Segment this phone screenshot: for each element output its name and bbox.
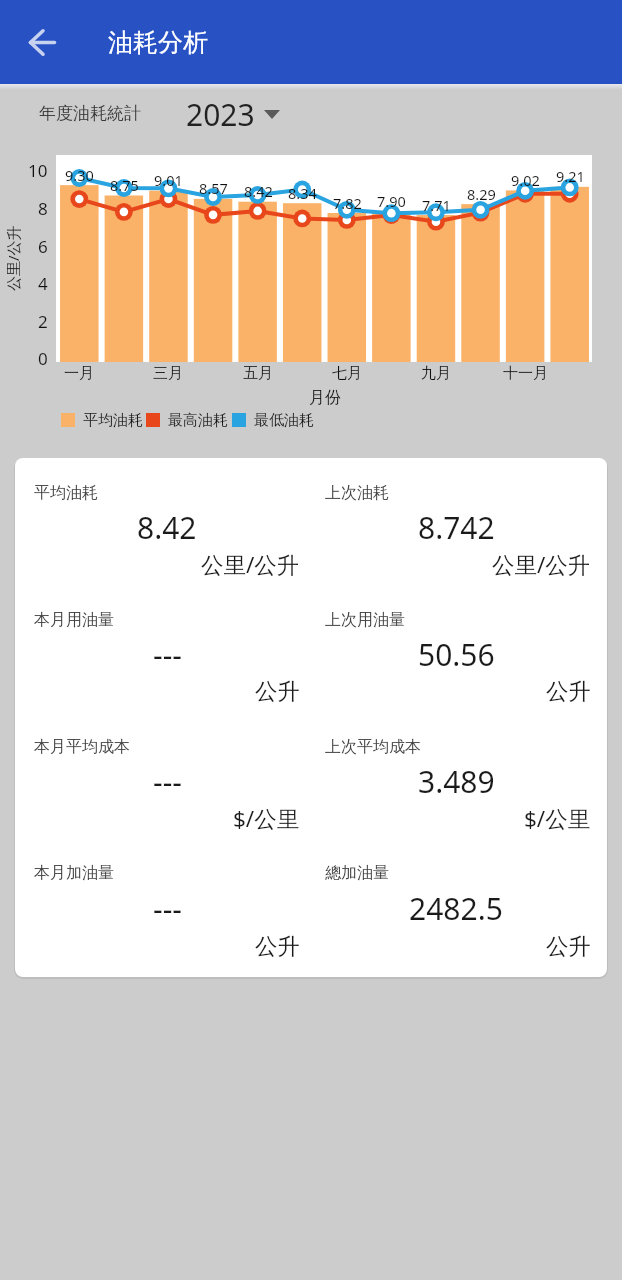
staticText: 七月: [332, 364, 362, 383]
staticText: 50.56: [418, 634, 495, 675]
staticText: 公里/公升: [201, 549, 300, 580]
staticText: 8: [38, 197, 48, 220]
staticText: 月份: [309, 388, 341, 408]
staticText: 上次平均成本: [325, 737, 421, 757]
staticText: 平均油耗: [34, 483, 98, 503]
staticText: 總加油量: [325, 863, 389, 883]
staticText: 9.01: [154, 170, 183, 190]
staticText: 8.75: [110, 175, 139, 195]
staticText: 上次用油量: [325, 610, 405, 630]
staticText: 一月: [64, 364, 94, 383]
staticText: ---: [153, 761, 182, 802]
staticText: 公升: [546, 677, 591, 705]
staticText: 8.57: [199, 178, 228, 198]
staticText: 本月用油量: [34, 610, 114, 630]
staticText: 最低油耗: [254, 411, 314, 430]
staticText: 年度油耗統計: [39, 103, 141, 124]
staticText: 公升: [255, 677, 300, 705]
staticText: 本月加油量: [34, 863, 114, 883]
staticText: 本月平均成本: [34, 737, 130, 757]
staticText: 2: [38, 310, 48, 333]
staticText: 最高油耗: [168, 411, 228, 430]
staticText: 8.42: [244, 181, 273, 201]
staticText: 9.30: [65, 165, 94, 185]
staticText: ---: [153, 888, 182, 929]
staticText: 8.742: [418, 507, 495, 548]
staticText: 7.90: [377, 191, 406, 211]
staticText: 10: [28, 159, 48, 182]
staticText: 油耗分析: [108, 27, 208, 58]
staticText: 4: [38, 272, 48, 295]
staticText: 2023: [186, 94, 255, 135]
staticText: 3.489: [418, 761, 495, 802]
staticText: 公升: [255, 932, 300, 960]
staticText: 三月: [153, 364, 183, 383]
staticText: 6: [38, 235, 48, 258]
staticText: 十一月: [503, 364, 548, 383]
staticText: 九月: [421, 364, 451, 383]
staticText: 公升: [546, 932, 591, 960]
staticText: 8.29: [467, 184, 496, 204]
staticText: 2482.5: [409, 888, 503, 929]
staticText: 平均油耗: [83, 411, 143, 430]
staticText: 7.82: [333, 193, 362, 213]
staticText: 7.71: [422, 195, 451, 215]
staticText: 公里/公升: [492, 549, 591, 580]
button[interactable]: 2023: [170, 90, 295, 138]
staticText: 公里/公升: [3, 225, 23, 291]
staticText: 9.02: [511, 170, 540, 190]
staticText: $/公里: [233, 803, 300, 834]
staticText: 8.34: [288, 183, 317, 203]
staticText: $/公里: [524, 803, 591, 834]
staticText: ---: [153, 634, 182, 675]
button[interactable]: [15, 15, 71, 71]
staticText: 0: [38, 347, 48, 370]
staticText: 五月: [243, 364, 273, 383]
staticText: 8.42: [137, 507, 197, 548]
staticText: 9.21: [556, 166, 585, 186]
staticText: 上次油耗: [325, 483, 389, 503]
